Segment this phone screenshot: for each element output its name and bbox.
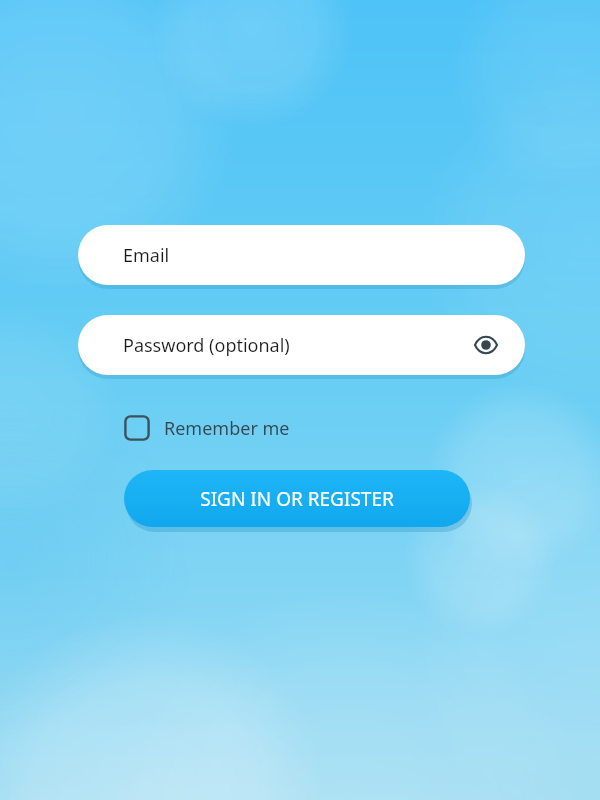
staticText: Password (optional) xyxy=(123,333,290,358)
button[interactable]: Password (optional) xyxy=(78,315,525,375)
staticText: Email xyxy=(123,243,170,268)
staticText: SIGN IN OR REGISTER xyxy=(200,486,394,512)
button[interactable]: SIGN IN OR REGISTER xyxy=(124,470,470,527)
button[interactable]: Email xyxy=(78,225,525,285)
staticText: Remember me xyxy=(164,416,290,441)
button[interactable]: Show password xyxy=(471,330,501,360)
button[interactable]: Remember me xyxy=(120,411,290,445)
